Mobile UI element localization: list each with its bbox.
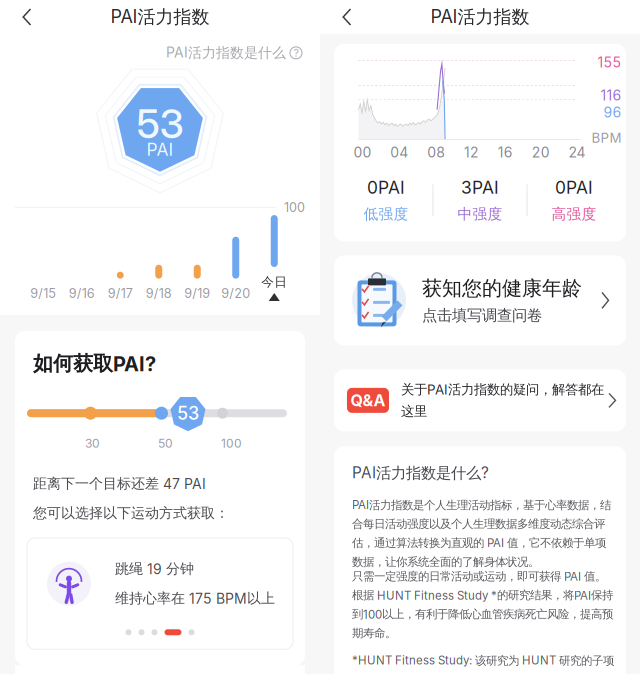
staticText: *HUNT Fitness Study: 该研究为 HUNT 研究的子项目，由挪… <box>352 653 614 674</box>
staticText: 30 <box>85 436 100 451</box>
staticText: 04 <box>390 144 408 161</box>
staticText: 16 <box>498 144 513 161</box>
staticText: PAI <box>146 139 173 160</box>
staticText: 24 <box>568 144 585 161</box>
staticText: 3PAI <box>461 177 499 198</box>
staticText: 100 <box>284 200 305 215</box>
staticText: 中强度 <box>457 205 502 223</box>
button[interactable]: Back <box>7 0 47 34</box>
staticText: PAI活力指数是什么 <box>166 44 286 62</box>
staticText: 00 <box>353 144 371 161</box>
staticText: 距离下一个目标还差 47 PAI <box>33 475 206 492</box>
staticText: ? <box>293 46 298 59</box>
staticText: BPM <box>591 130 621 146</box>
staticText: 155 <box>597 54 621 71</box>
button[interactable]: Q&A <box>334 369 626 431</box>
staticText: 100 <box>221 436 242 451</box>
staticText: 获知您的健康年龄 <box>422 276 582 301</box>
staticText: PAI活力指数 <box>110 6 209 28</box>
staticText: 20 <box>532 144 550 161</box>
staticText: 9/15 <box>30 286 56 301</box>
staticText: 53 <box>136 99 183 148</box>
button[interactable]: 获知您的健康年龄 <box>334 255 626 345</box>
staticText: 低强度 <box>363 205 408 223</box>
button[interactable]: PAI活力指数是什么 <box>166 34 320 64</box>
staticText: 08 <box>427 144 445 161</box>
staticText: 维持心率在 175 BPM以上 <box>115 590 275 607</box>
staticText: 只需一定强度的日常活动或运动，即可获得 PAI 值。根据 HUNT Fitnes… <box>352 569 613 640</box>
staticText: 这里 <box>401 403 427 420</box>
button[interactable]: Back <box>327 0 367 34</box>
staticText: 116 <box>600 87 621 104</box>
staticText: PAI活力指数 <box>430 6 529 28</box>
staticText: 9/18 <box>146 286 172 301</box>
staticText: PAI活力指数是个人生理活动指标，基于心率数据，结合每日活动强度以及个人生理数据… <box>352 498 611 569</box>
staticText: 关于PAI活力指数的疑问，解答都在 <box>401 381 604 398</box>
staticText: 今日 <box>261 274 287 290</box>
staticText: 0PAI <box>555 177 593 198</box>
staticText: 50 <box>158 436 173 451</box>
staticText: 96 <box>603 104 621 121</box>
staticText: 12 <box>464 144 479 161</box>
staticText: 高强度 <box>551 205 596 223</box>
staticText: Q&A <box>350 391 385 410</box>
staticText: 53 <box>177 402 199 424</box>
staticText: 您可以选择以下运动方式获取： <box>33 504 229 522</box>
staticText: PAI活力指数是什么? <box>352 463 489 483</box>
staticText: 点击填写调查问卷 <box>422 306 542 325</box>
staticText: 0PAI <box>367 177 405 198</box>
staticText: 跳绳 19 分钟 <box>115 560 194 578</box>
staticText: 9/19 <box>184 286 210 301</box>
staticText: 如何获取PAI? <box>33 351 156 376</box>
staticText: 9/17 <box>108 286 133 301</box>
staticText: 9/16 <box>69 286 95 301</box>
staticText: 9/20 <box>221 286 250 301</box>
